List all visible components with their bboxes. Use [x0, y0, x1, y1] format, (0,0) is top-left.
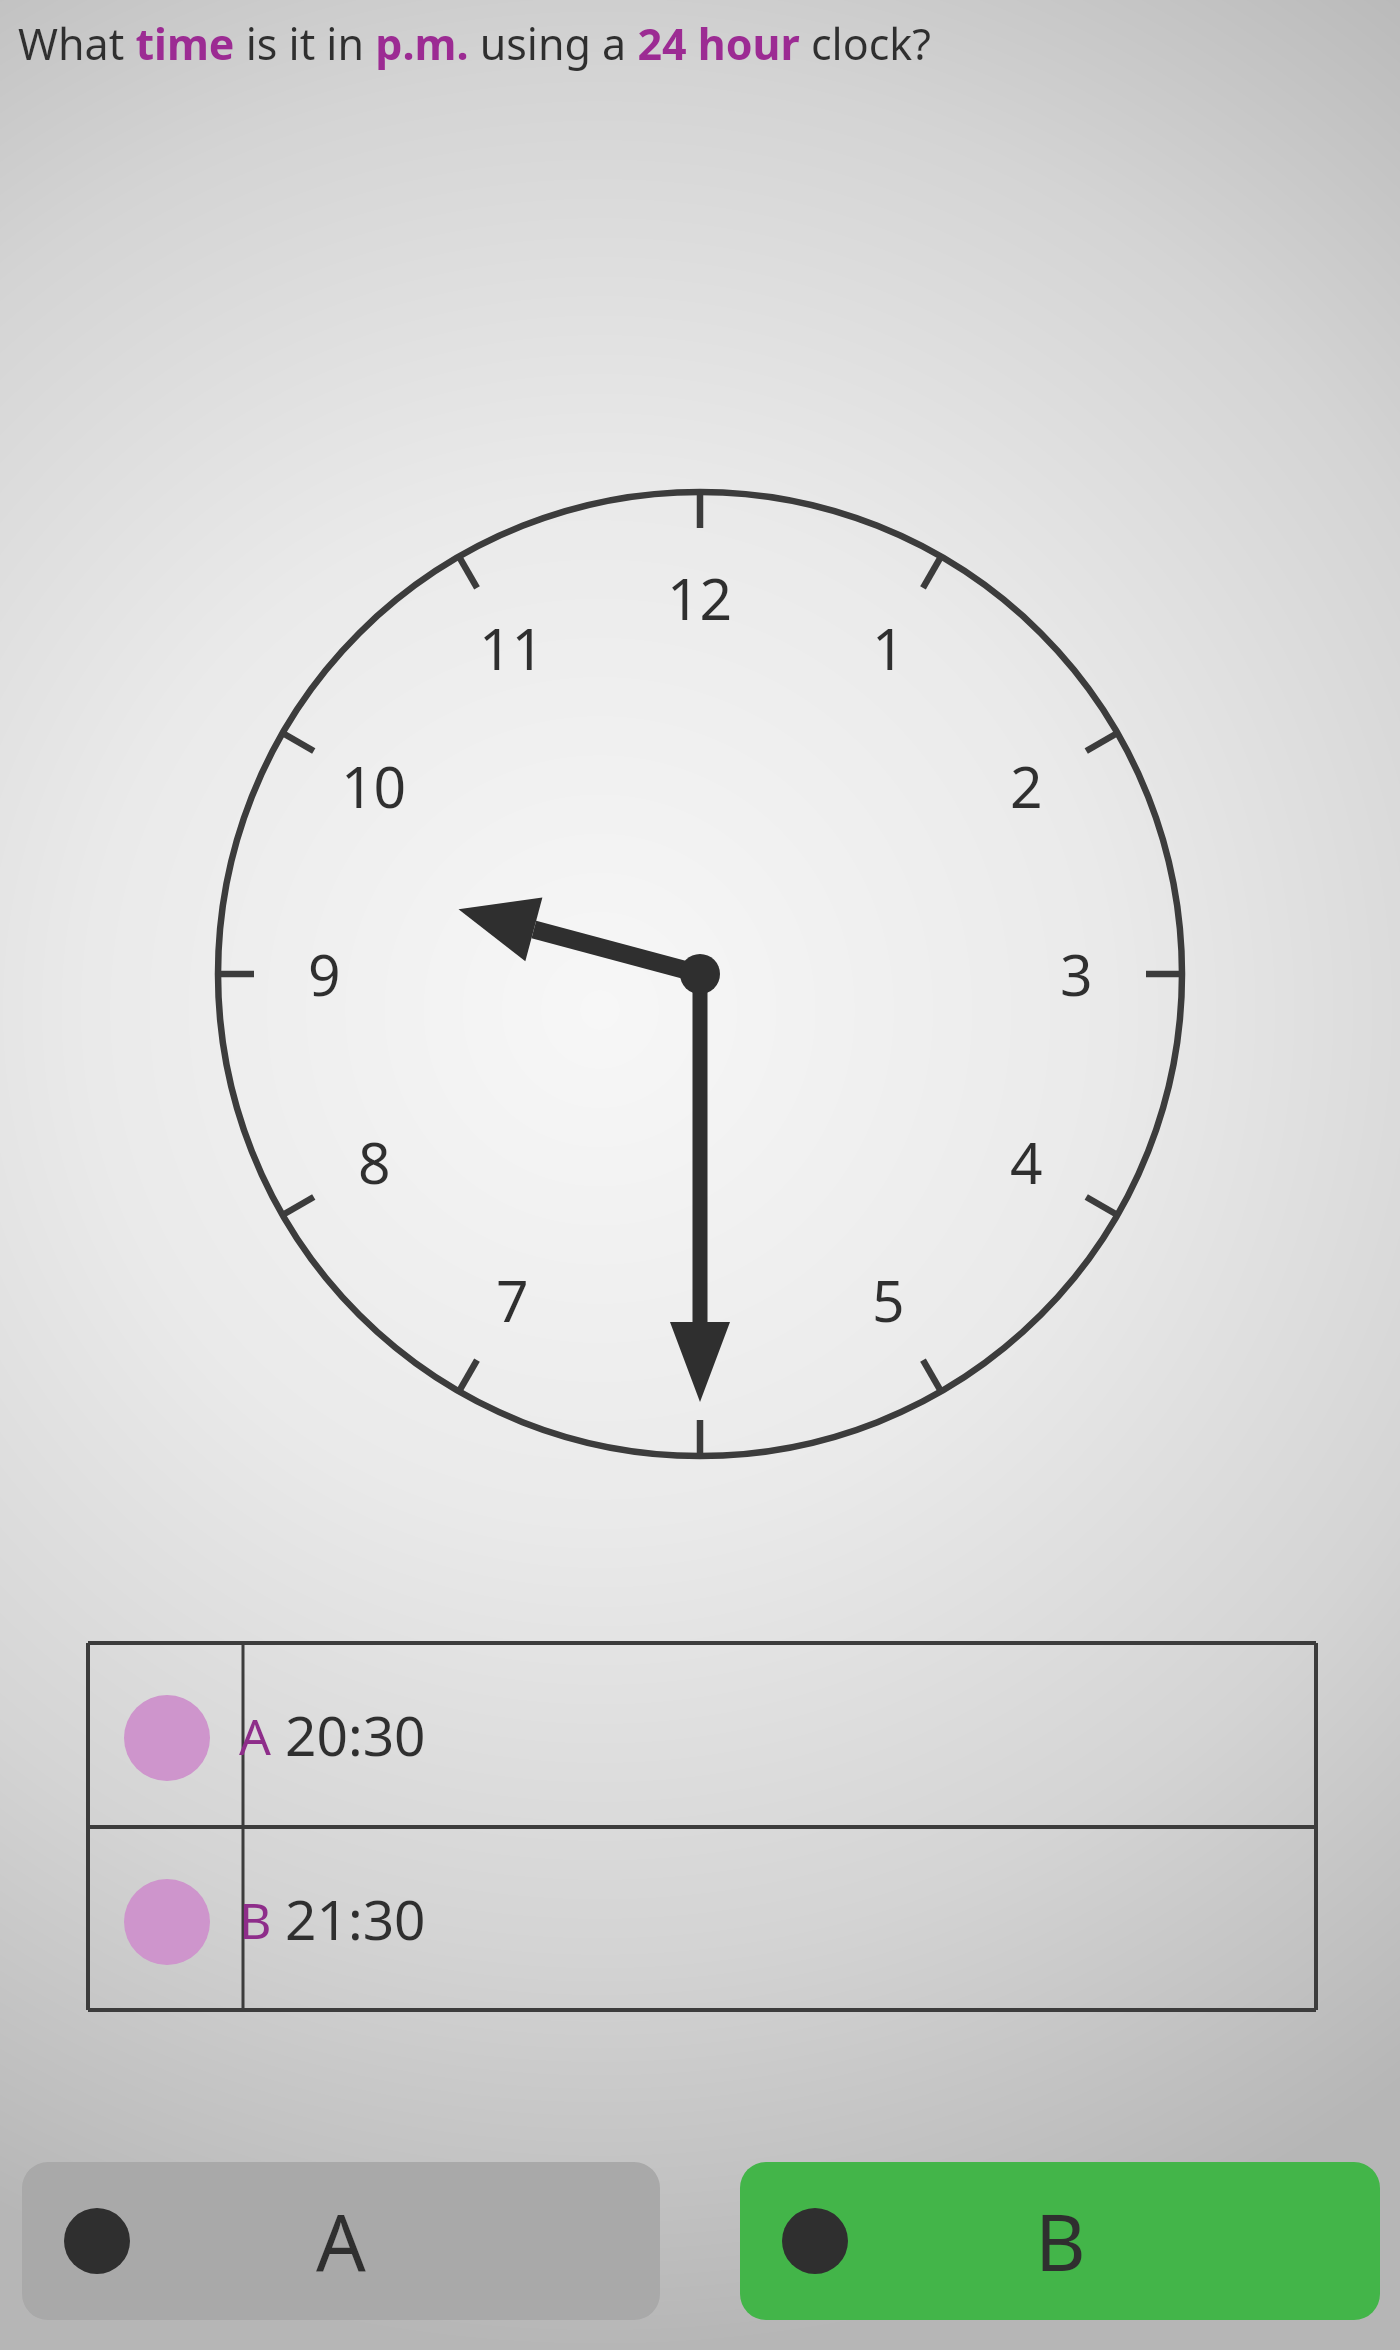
- staticText: 4: [1010, 1123, 1043, 1201]
- staticText: 8: [358, 1123, 391, 1201]
- staticText: 5: [872, 1261, 905, 1339]
- staticText: A: [239, 1702, 271, 1770]
- staticText: 10: [341, 747, 407, 825]
- staticText: 1: [872, 609, 905, 687]
- button[interactable]: Answer B: [740, 2162, 1380, 2320]
- staticText: A: [316, 2188, 366, 2294]
- button[interactable]: B: [88, 1827, 1316, 2010]
- staticText: 9: [308, 935, 341, 1013]
- staticText: 3: [1060, 935, 1093, 1013]
- staticText: B: [1035, 2188, 1086, 2294]
- button[interactable]: A: [88, 1643, 1316, 1827]
- staticText: 7: [496, 1261, 529, 1339]
- staticText: 11: [479, 609, 545, 687]
- staticText: 6: [684, 1311, 717, 1389]
- staticText: 20:30: [285, 1697, 426, 1772]
- button[interactable]: Answer A: [22, 2162, 660, 2320]
- staticText: 21:30: [285, 1881, 426, 1956]
- staticText: What time is it in p.m. using a 24 hour …: [18, 14, 931, 73]
- staticText: 2: [1010, 747, 1043, 825]
- staticText: B: [239, 1886, 272, 1954]
- staticText: 12: [667, 559, 733, 637]
